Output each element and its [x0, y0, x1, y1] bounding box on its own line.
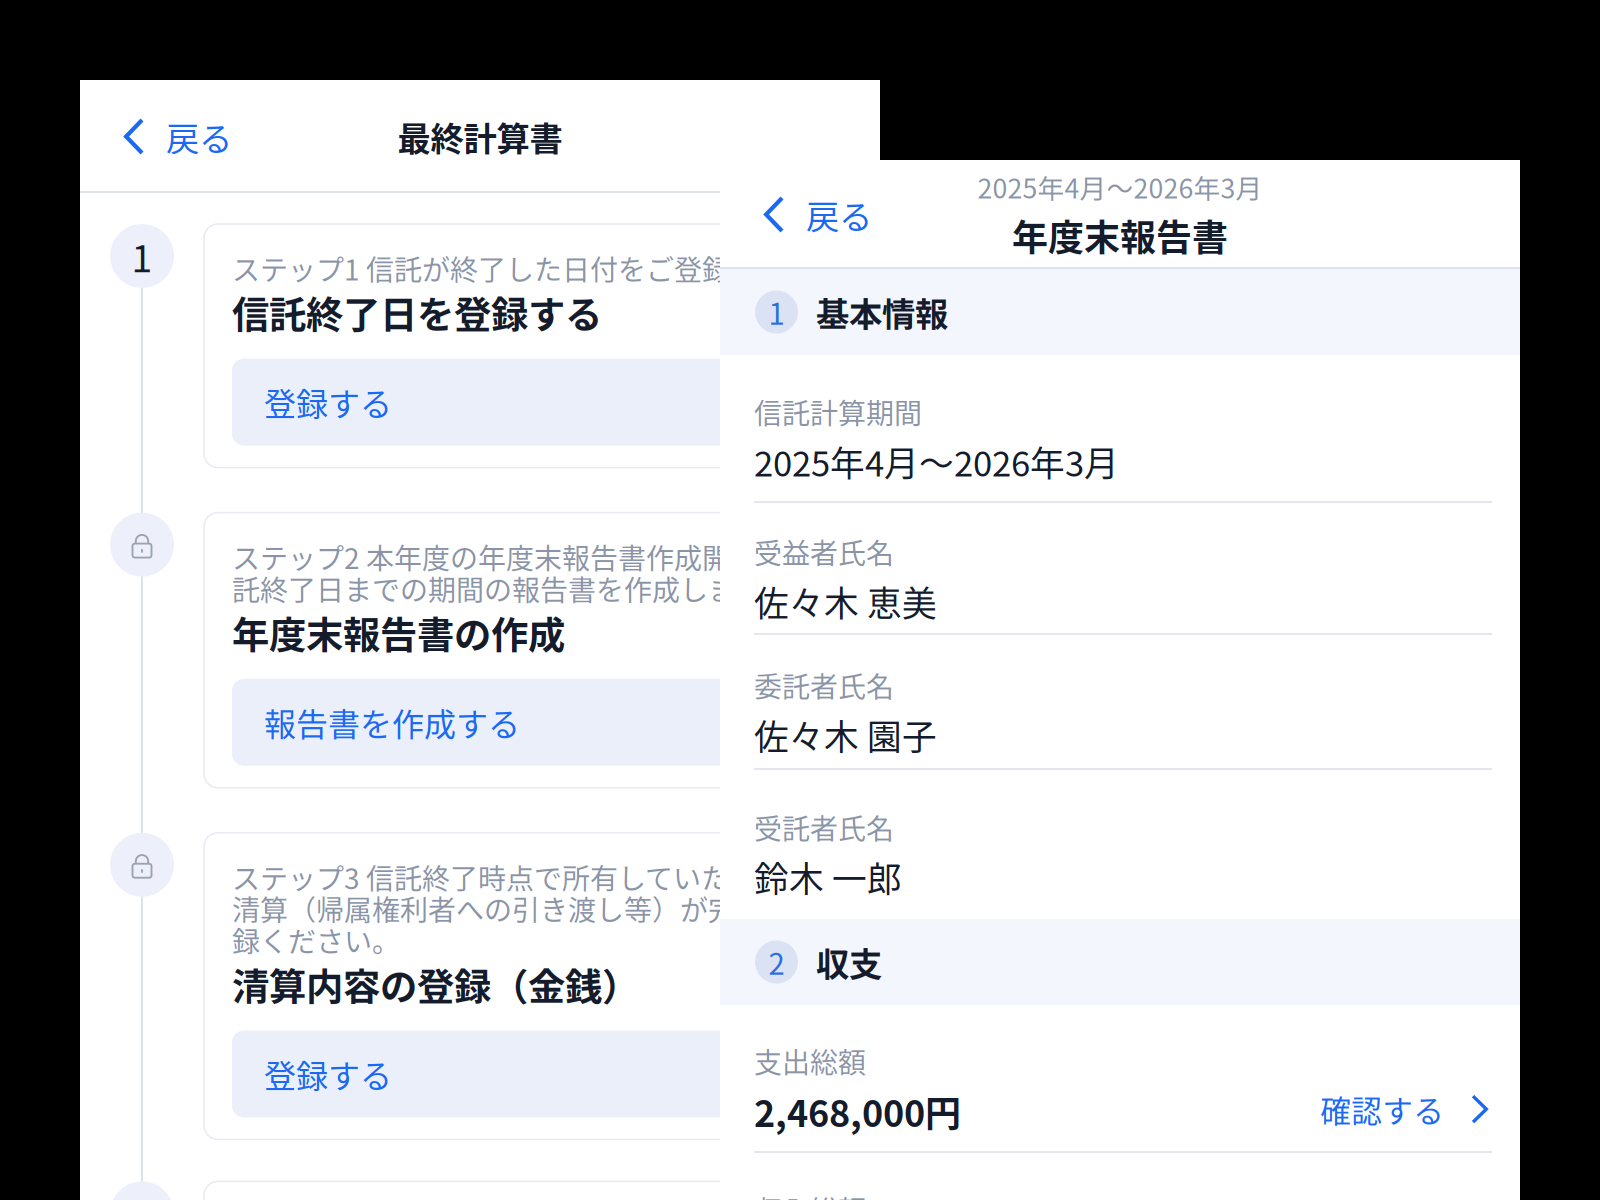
button[interactable]: 登録する — [232, 359, 1044, 446]
staticText: 収入総額 — [754, 1189, 866, 1200]
staticText: 報告書を作成する — [264, 699, 520, 745]
staticText: 受託者氏名 — [754, 807, 894, 848]
staticText: ステップ1 信託が終了した日付をご登録ください。 — [232, 248, 870, 288]
staticText: 清算内容の登録（金銭） — [232, 957, 639, 1011]
button[interactable]: 確認する — [1320, 1081, 1488, 1137]
staticText: 鈴木 一郎 — [754, 852, 902, 902]
button[interactable]: ステップ2 本年度の年度末報告書作成開始日から信 — [204, 513, 1070, 788]
button[interactable]: ステップ3 信託終了時点で所有していた信託財産の — [204, 833, 1070, 1139]
staticText: 信託計算期間 — [754, 392, 922, 432]
staticText: 委託者氏名 — [754, 665, 894, 706]
staticText: 録ください。 — [232, 920, 400, 960]
staticText: 基本情報 — [816, 288, 948, 336]
button[interactable]: 登録する — [232, 1030, 1044, 1117]
button[interactable]: ステップ4 信託財産の清算が完了したら、最終計算 — [204, 1181, 1070, 1200]
staticText: 信託終了日を登録する — [232, 285, 602, 340]
staticText: 収支 — [816, 938, 882, 986]
staticText: 確認する — [1320, 1087, 1444, 1131]
staticText: 2025年4月〜2026年3月 — [977, 168, 1262, 206]
staticText: 1 — [131, 229, 152, 283]
staticText: ステップ2 本年度の年度末報告書作成開始日から信 — [232, 537, 870, 577]
staticText: 1 — [768, 291, 784, 333]
staticText: 支出総額 — [754, 1041, 866, 1081]
staticText: 清算（帰属権利者への引き渡し等）が完了したら登 — [232, 888, 876, 929]
staticText: 年度末報告書 — [1012, 209, 1228, 261]
staticText: 登録する — [264, 379, 392, 425]
staticText: 2,468,000円 — [754, 1085, 961, 1137]
staticText: 佐々木 園子 — [754, 710, 937, 760]
staticText: 佐々木 恵美 — [754, 576, 937, 626]
button[interactable]: 報告書を作成する — [232, 679, 1044, 766]
button[interactable]: 戻る — [106, 98, 250, 175]
staticText: 受益者氏名 — [754, 532, 894, 572]
staticText: ステップ3 信託終了時点で所有していた信託財産の — [232, 857, 869, 897]
staticText: 戻る — [806, 190, 872, 239]
staticText: 2 — [768, 941, 784, 983]
staticText: 登録する — [264, 1051, 392, 1097]
button[interactable]: 戻る — [746, 176, 890, 253]
staticText: 託終了日までの期間の報告書を作成します。 — [232, 568, 789, 609]
staticText: 2025年4月〜2026年3月 — [754, 436, 1119, 486]
staticText: 年度末報告書の作成 — [232, 606, 565, 660]
button[interactable]: ステップ1 信託が終了した日付をご登録ください。 — [204, 224, 1070, 468]
staticText: 戻る — [166, 112, 232, 161]
staticText: 最終計算書 — [397, 112, 562, 161]
